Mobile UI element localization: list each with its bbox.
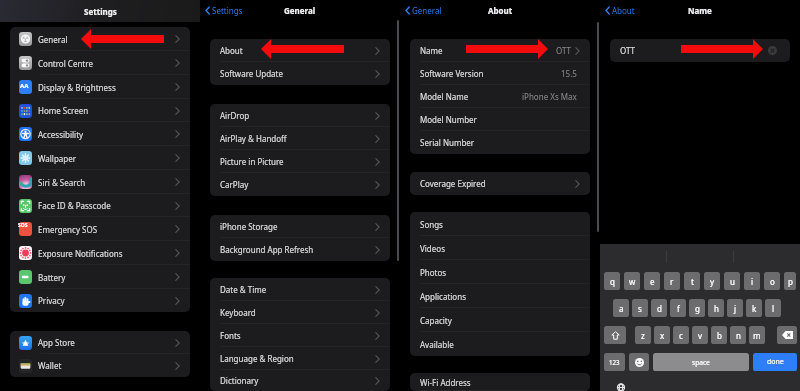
- staticText: b: [717, 330, 722, 341]
- button[interactable]: x: [654, 326, 670, 344]
- button[interactable]: Dictionary: [210, 370, 390, 391]
- button[interactable]: General: [10, 27, 190, 51]
- button[interactable]: Language & Region: [210, 347, 390, 370]
- button[interactable]: Available: [410, 332, 590, 356]
- staticText: Wi-Fi Address: [420, 377, 471, 388]
- staticText: Name: [688, 5, 712, 16]
- staticText: Privacy: [38, 295, 65, 306]
- button[interactable]: [777, 326, 797, 344]
- button[interactable]: Exposure Notifications: [10, 241, 190, 265]
- button[interactable]: Model Name: [410, 85, 590, 108]
- button[interactable]: Face ID & Passcode: [10, 194, 190, 217]
- button[interactable]: j: [727, 299, 743, 317]
- button[interactable]: space: [653, 353, 749, 371]
- staticText: x: [660, 330, 665, 341]
- button[interactable]: a: [613, 299, 629, 317]
- button[interactable]: [629, 353, 649, 371]
- staticText: 123: [609, 358, 620, 366]
- button[interactable]: l: [765, 299, 781, 317]
- button[interactable]: AirPlay & Handoff: [210, 127, 390, 150]
- button[interactable]: 123: [604, 353, 625, 371]
- staticText: c: [679, 330, 683, 341]
- staticText: v: [698, 330, 703, 341]
- staticText: Background App Refresh: [220, 244, 314, 255]
- button[interactable]: b: [711, 326, 727, 344]
- button[interactable]: Wallet: [10, 354, 190, 377]
- button[interactable]: Photos: [410, 260, 590, 284]
- button[interactable]: General: [405, 5, 442, 16]
- button[interactable]: About: [605, 5, 635, 16]
- staticText: Battery: [38, 272, 66, 283]
- button[interactable]: Wi-Fi Address: [410, 373, 590, 391]
- staticText: Photos: [420, 267, 447, 278]
- button[interactable]: r: [664, 272, 680, 290]
- button[interactable]: Control Centre: [10, 51, 190, 75]
- staticText: AA: [20, 82, 29, 90]
- button[interactable]: d: [651, 299, 667, 317]
- button[interactable]: Battery: [10, 265, 190, 289]
- button[interactable]: s: [632, 299, 648, 317]
- button[interactable]: Settings: [205, 5, 243, 16]
- button[interactable]: Name: [410, 39, 590, 62]
- staticText: Software Update: [220, 68, 283, 79]
- button[interactable]: Siri & Search: [10, 170, 190, 194]
- button[interactable]: z: [635, 326, 651, 344]
- button[interactable]: Model Number: [410, 108, 590, 131]
- button[interactable]: y: [704, 272, 720, 290]
- staticText: SOS: [18, 222, 28, 229]
- button[interactable]: Software Version: [410, 62, 590, 85]
- button[interactable]: Coverage Expired: [410, 172, 590, 195]
- button[interactable]: Accessibility: [10, 122, 190, 146]
- button[interactable]: Privacy: [10, 289, 190, 312]
- button[interactable]: Display & Brightness: [10, 75, 190, 99]
- button[interactable]: About: [210, 39, 390, 62]
- button[interactable]: v: [692, 326, 708, 344]
- button[interactable]: [604, 326, 626, 344]
- button[interactable]: Capacity: [410, 308, 590, 332]
- button[interactable]: done: [753, 353, 797, 371]
- staticText: done: [767, 357, 784, 367]
- button[interactable]: e: [644, 272, 660, 290]
- button[interactable]: p: [784, 272, 796, 290]
- button[interactable]: i: [744, 272, 760, 290]
- staticText: Face ID & Passcode: [38, 200, 111, 211]
- button[interactable]: f: [670, 299, 686, 317]
- button[interactable]: k: [746, 299, 762, 317]
- button[interactable]: w: [624, 272, 640, 290]
- button[interactable]: Fonts: [210, 324, 390, 347]
- button[interactable]: Date & Time: [210, 278, 390, 301]
- button[interactable]: Software Update: [210, 62, 390, 85]
- button[interactable]: Keyboard: [210, 301, 390, 324]
- staticText: e: [650, 276, 655, 287]
- button[interactable]: Picture in Picture: [210, 150, 390, 173]
- button[interactable]: Home Screen: [10, 99, 190, 122]
- button[interactable]: n: [730, 326, 746, 344]
- button[interactable]: App Store: [10, 331, 190, 354]
- button[interactable]: Switch keyboard: [614, 384, 628, 391]
- button[interactable]: o: [764, 272, 780, 290]
- button[interactable]: Serial Number: [410, 131, 590, 154]
- staticText: General: [284, 5, 316, 16]
- staticText: OTT: [620, 45, 636, 56]
- button[interactable]: CarPlay: [210, 173, 390, 196]
- button[interactable]: Emergency SOS: [10, 217, 190, 241]
- button[interactable]: c: [673, 326, 689, 344]
- button[interactable]: iPhone Storage: [210, 215, 390, 238]
- button[interactable]: g: [689, 299, 705, 317]
- staticText: CarPlay: [220, 179, 249, 190]
- button[interactable]: Applications: [410, 284, 590, 308]
- button[interactable]: q: [604, 272, 620, 290]
- button[interactable]: Background App Refresh: [210, 238, 390, 261]
- button[interactable]: m: [749, 326, 765, 344]
- button[interactable]: AirDrop: [210, 104, 390, 127]
- button[interactable]: Videos: [410, 236, 590, 260]
- staticText: Available: [420, 339, 454, 350]
- button[interactable]: Clear text: [768, 46, 777, 55]
- button[interactable]: t: [684, 272, 700, 290]
- staticText: Coverage Expired: [420, 178, 486, 189]
- button[interactable]: Wallpaper: [10, 146, 190, 170]
- staticText: 15.5: [561, 68, 577, 79]
- button[interactable]: Songs: [410, 212, 590, 236]
- button[interactable]: h: [708, 299, 724, 317]
- button[interactable]: u: [724, 272, 740, 290]
